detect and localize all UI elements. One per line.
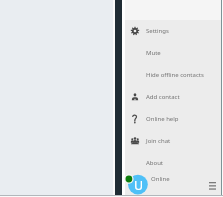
staticText: Online: [151, 175, 170, 183]
staticText: Join chat: [146, 137, 171, 145]
staticText: Add contact: [146, 93, 180, 101]
staticText: Online help: [146, 115, 179, 123]
staticText: About: [146, 159, 164, 167]
staticText: U: [134, 177, 144, 194]
button[interactable]: About: [124, 152, 221, 174]
button[interactable]: Hide offline contacts: [124, 64, 221, 86]
staticText: Mute: [146, 49, 161, 57]
button[interactable]: Settings: [124, 20, 221, 42]
staticText: Hide offline contacts: [146, 71, 204, 79]
staticText: Settings: [146, 27, 169, 35]
button[interactable]: Mute: [124, 42, 221, 64]
button[interactable]: Menu: [204, 176, 221, 193]
button[interactable]: U: [124, 172, 204, 195]
button[interactable]: Add contact: [124, 86, 221, 108]
button[interactable]: Online help: [124, 108, 221, 130]
button[interactable]: Join chat: [124, 130, 221, 152]
